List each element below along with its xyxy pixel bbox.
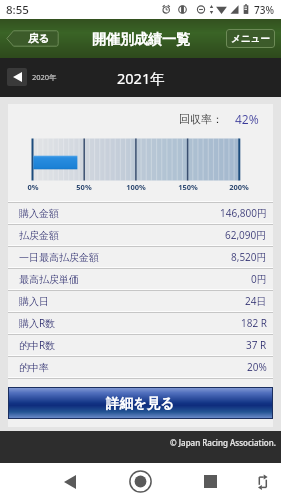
- staticText: © Japan Racing Association.: [170, 437, 276, 448]
- staticText: 8:55: [6, 2, 29, 18]
- button[interactable]: 的中R数: [8, 335, 273, 355]
- staticText: 50%: [70, 182, 98, 192]
- staticText: 62,090円: [225, 228, 267, 242]
- button[interactable]: Recent apps: [193, 464, 228, 499]
- button[interactable]: 購入金額: [8, 203, 273, 223]
- staticText: 払戻金額: [19, 229, 59, 242]
- staticText: 146,800円: [220, 206, 267, 220]
- button[interactable]: Home: [123, 464, 158, 499]
- staticText: 0円: [251, 272, 267, 286]
- staticText: 回収率：: [179, 112, 223, 126]
- staticText: 182 R: [241, 316, 267, 330]
- button[interactable]: メニュー: [226, 29, 275, 48]
- button[interactable]: Rotate screen: [248, 467, 278, 497]
- staticText: 200%: [225, 182, 253, 192]
- staticText: 一日最高払戻金額: [19, 251, 99, 264]
- button[interactable]: 一日最高払戻金額: [8, 247, 273, 267]
- button[interactable]: 詳細を見る: [9, 388, 272, 418]
- staticText: 73%: [254, 3, 274, 17]
- staticText: 8,520円: [231, 250, 267, 264]
- staticText: 20%: [247, 360, 267, 374]
- button[interactable]: 戻る: [6, 30, 59, 47]
- staticText: 購入日: [19, 295, 49, 308]
- button[interactable]: 購入R数: [8, 313, 273, 333]
- button[interactable]: 的中率: [8, 357, 273, 377]
- button[interactable]: 払戻金額: [8, 225, 273, 245]
- staticText: 24日: [245, 294, 267, 308]
- staticText: 0%: [19, 182, 47, 192]
- staticText: 2021年: [117, 68, 165, 88]
- staticText: 150%: [174, 182, 202, 192]
- staticText: 42%: [235, 111, 259, 127]
- staticText: 100%: [122, 182, 150, 192]
- staticText: 戻る: [28, 32, 50, 45]
- button[interactable]: Back: [52, 464, 87, 499]
- staticText: 購入金額: [19, 207, 59, 220]
- staticText: 2020年: [32, 72, 57, 82]
- staticText: メニュー: [231, 33, 270, 45]
- button[interactable]: 最高払戻単価: [8, 269, 273, 289]
- staticText: 的中R数: [19, 338, 56, 352]
- staticText: 開催別成績一覧: [92, 31, 190, 49]
- button[interactable]: 2020年: [7, 68, 57, 86]
- staticText: 的中率: [19, 361, 49, 374]
- button[interactable]: 購入日: [8, 291, 273, 311]
- staticText: 37 R: [246, 338, 267, 352]
- staticText: 購入R数: [19, 316, 56, 330]
- staticText: 最高払戻単価: [19, 273, 79, 286]
- staticText: 詳細を見る: [106, 395, 175, 412]
